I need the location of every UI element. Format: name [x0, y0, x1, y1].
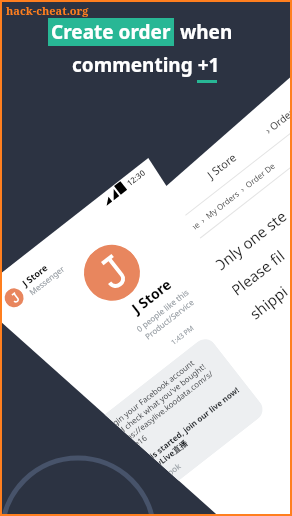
staticText: hack-cheat.org	[6, 3, 89, 18]
staticText: J Store	[127, 274, 175, 317]
staticText: Messenger	[27, 263, 67, 297]
staticText: Login your Facebook account and check wh…	[103, 351, 222, 457]
staticText: Create order	[51, 19, 171, 45]
staticText: when	[180, 19, 233, 45]
staticText: commenting +1	[72, 52, 220, 78]
staticText: Only one ste	[208, 205, 291, 276]
staticText: Please fil	[227, 245, 289, 300]
staticText: › Order De	[262, 96, 292, 137]
staticText: Sale is started, join our live now! #Eas…	[133, 384, 247, 480]
staticText: Home › My Orders › Order De	[177, 160, 277, 241]
staticText: store.koodata.com	[146, 142, 209, 194]
staticText: Product/Service	[142, 296, 196, 341]
staticText: J Store	[19, 261, 50, 289]
staticText: 0 people like this	[134, 286, 191, 334]
staticText: J Store	[204, 149, 240, 182]
staticText: 1:43 PM	[169, 323, 197, 347]
staticText: 12:30	[124, 167, 147, 188]
staticText: Facebook	[147, 460, 183, 491]
staticText: shippi	[245, 281, 291, 323]
